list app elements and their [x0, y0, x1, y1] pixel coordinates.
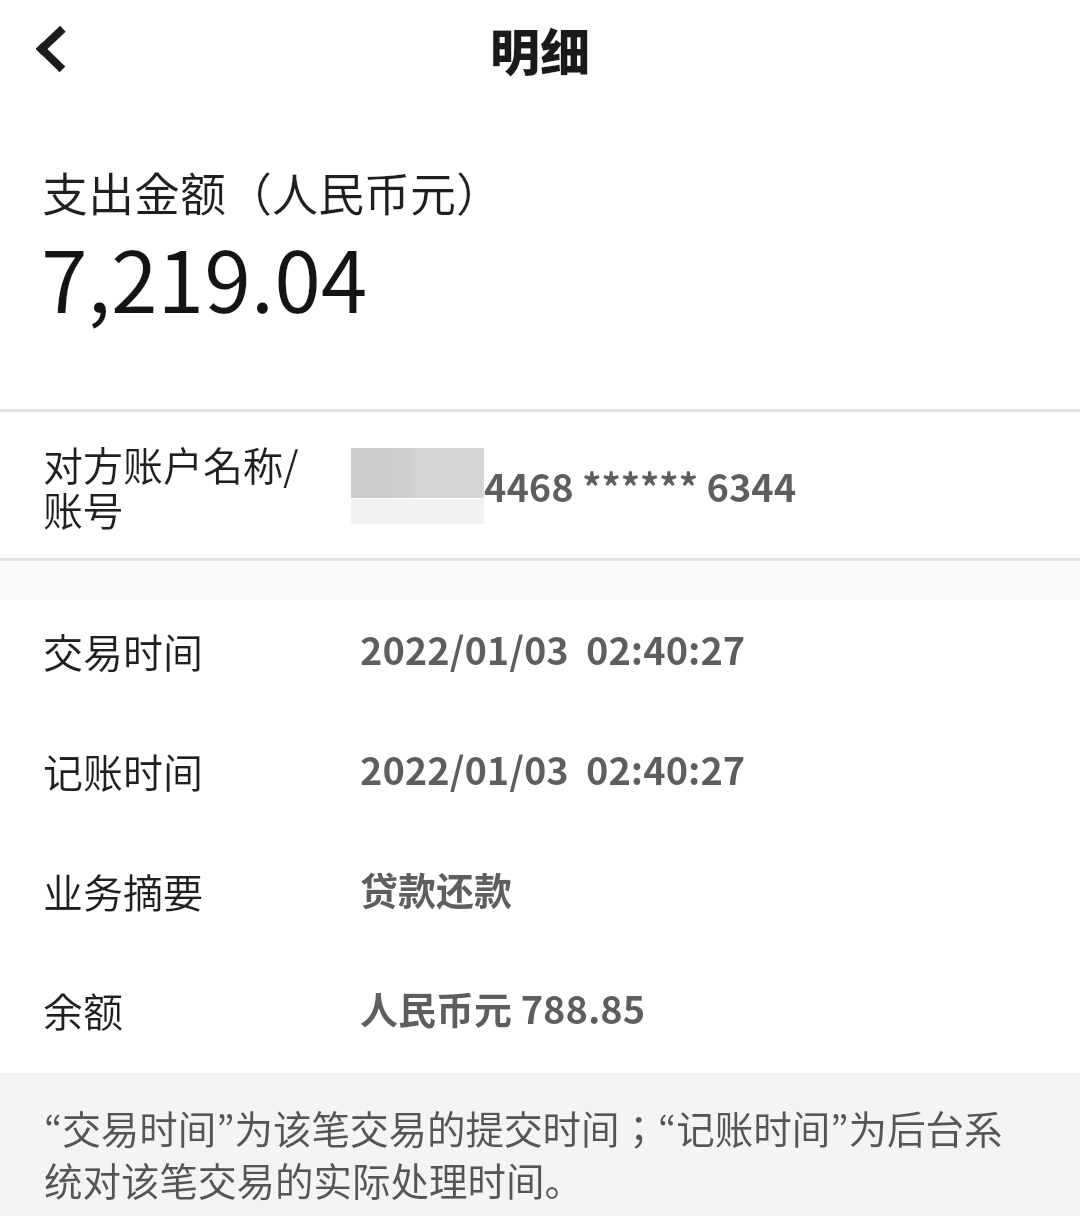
- button[interactable]: 余额: [0, 949, 1080, 1051]
- staticText: 记账时间: [43, 742, 203, 800]
- staticText: 贷款还款: [360, 861, 513, 916]
- button[interactable]: 交易时间: [0, 590, 1080, 692]
- staticText: 对方账户名称/: [43, 435, 299, 493]
- staticText: “交易时间”为该笔交易的提交时间；“记账时间”为后台系统对该笔交易的实际处理时间…: [44, 1099, 1019, 1207]
- staticText: 余额: [43, 981, 123, 1039]
- staticText: 明细: [0, 13, 1080, 85]
- staticText: 4468 ****** 6344: [484, 458, 797, 513]
- staticText: 交易时间: [43, 622, 203, 680]
- staticText: 2022/01/03 02:40:27: [360, 741, 746, 796]
- staticText: 7,219.04: [41, 216, 368, 338]
- button[interactable]: 业务摘要: [0, 830, 1080, 932]
- staticText: 业务摘要: [43, 862, 203, 920]
- button[interactable]: Back: [0, 0, 100, 100]
- staticText: 2022/01/03 02:40:27: [360, 621, 746, 676]
- button[interactable]: 记账时间: [0, 710, 1080, 812]
- staticText: 人民币元 788.85: [360, 980, 646, 1035]
- button[interactable]: 对方账户名称/: [0, 412, 1080, 558]
- staticText: 账号: [43, 480, 123, 538]
- staticText: 支出金额（人民币元）: [42, 158, 502, 225]
